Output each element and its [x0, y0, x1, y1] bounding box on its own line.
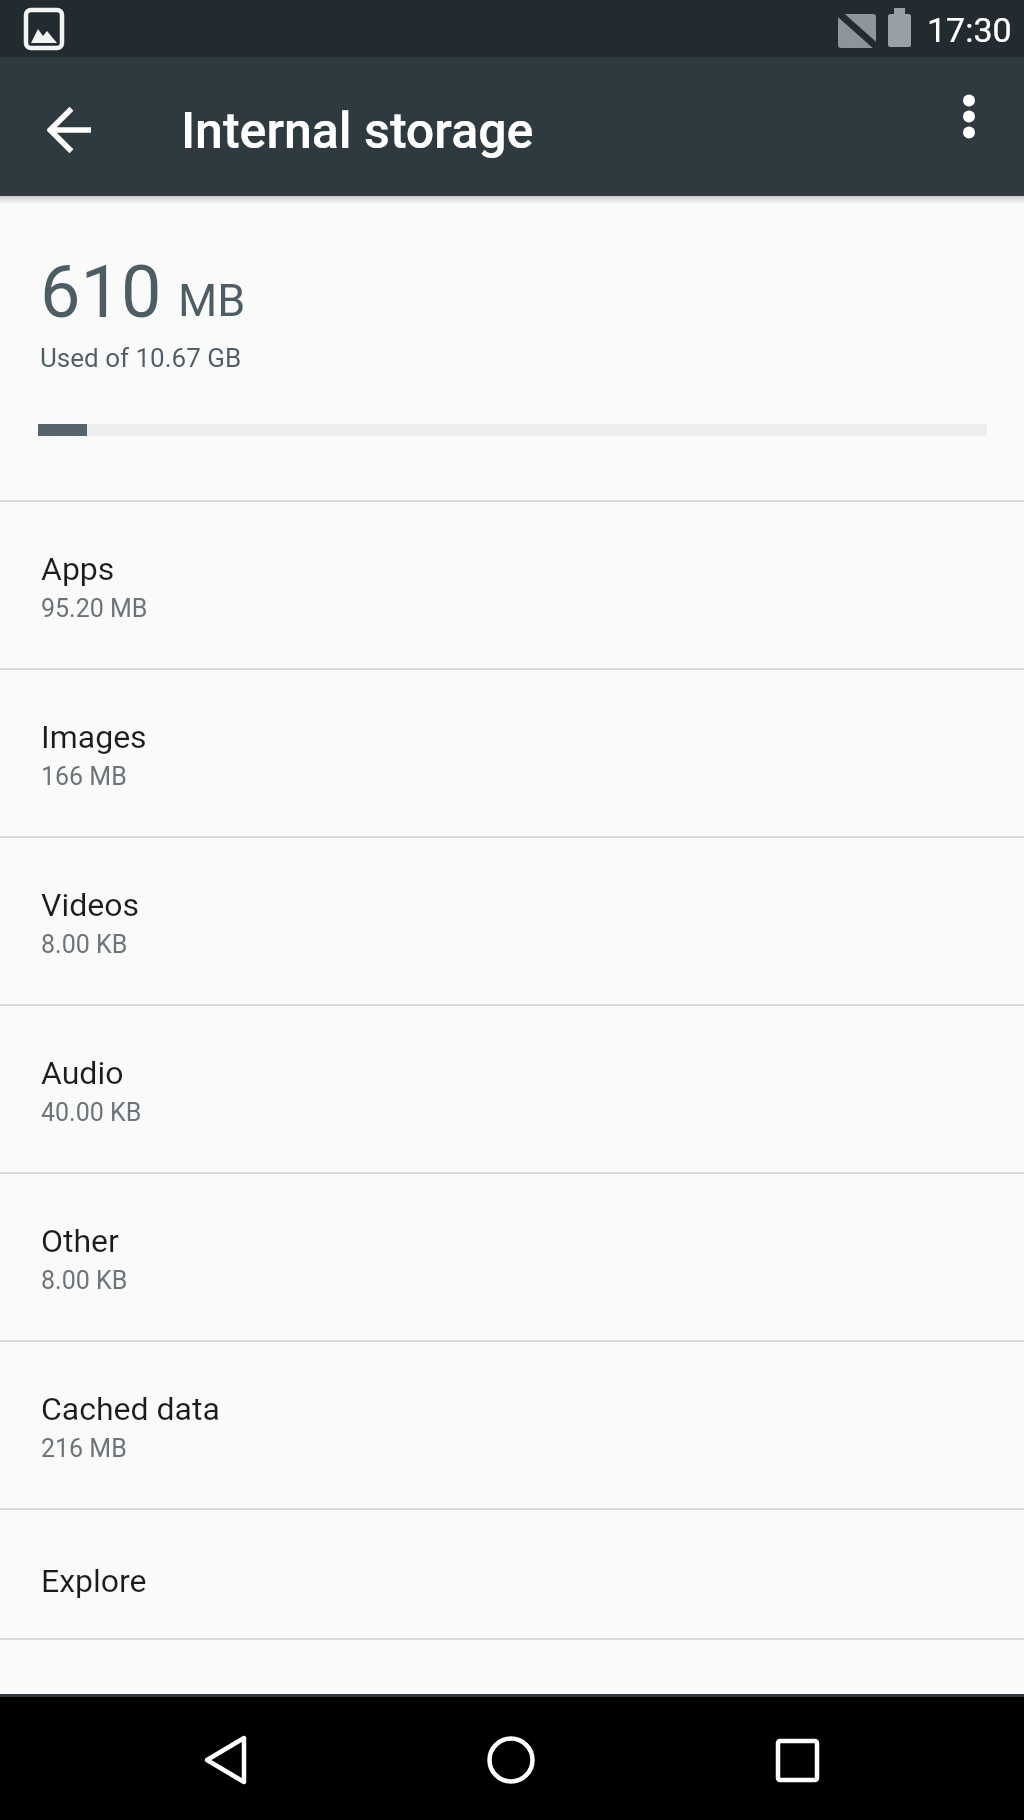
button[interactable]	[0, 57, 100, 196]
button[interactable]: Cached data	[0, 1342, 1024, 1508]
staticText: Other	[41, 1222, 119, 1260]
staticText: 95.20 MB	[41, 594, 148, 623]
button[interactable]	[452, 1697, 572, 1817]
staticText: Explore	[41, 1562, 147, 1600]
staticText: MB	[178, 274, 246, 327]
staticText: 216 MB	[41, 1434, 127, 1463]
button[interactable]	[934, 57, 1024, 196]
staticText: Videos	[41, 886, 139, 924]
staticText: 8.00 KB	[41, 930, 128, 959]
staticText: Audio	[41, 1054, 124, 1092]
staticText: 610	[40, 250, 162, 334]
button[interactable]: Videos	[0, 838, 1024, 1004]
staticText: Used of 10.67 GB	[40, 343, 242, 373]
staticText: 40.00 KB	[41, 1098, 142, 1127]
button[interactable]	[165, 1697, 285, 1817]
button[interactable]	[737, 1697, 857, 1817]
button[interactable]: Other	[0, 1174, 1024, 1340]
button[interactable]: Images	[0, 670, 1024, 836]
staticText: Internal storage	[181, 102, 534, 161]
button[interactable]: Apps	[0, 502, 1024, 668]
staticText: 166 MB	[41, 762, 127, 791]
staticText: 8.00 KB	[41, 1266, 128, 1295]
staticText: Images	[41, 718, 147, 756]
staticText: Cached data	[41, 1390, 220, 1428]
staticText: 17:30	[927, 10, 1012, 50]
button[interactable]: Explore	[0, 1510, 1024, 1638]
button[interactable]: Audio	[0, 1006, 1024, 1172]
staticText: Apps	[41, 550, 115, 588]
